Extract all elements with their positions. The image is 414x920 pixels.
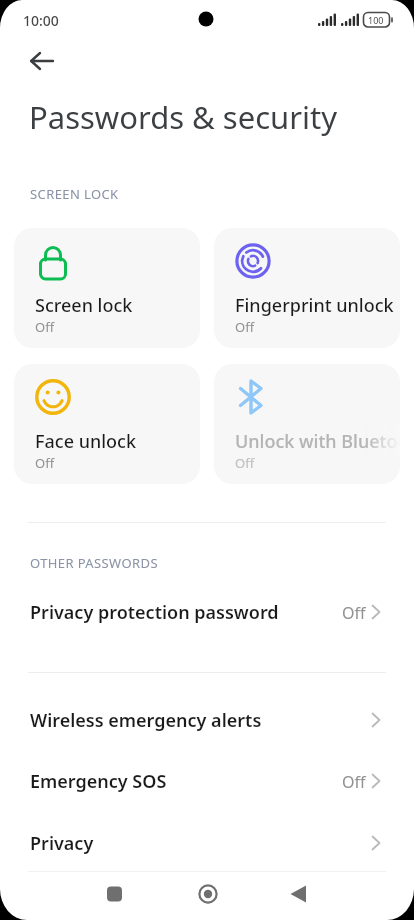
staticText: Face unlock: [35, 429, 136, 454]
staticText: 100: [368, 14, 384, 26]
staticText: Fingerprint unlock: [235, 293, 394, 318]
staticText: Off: [342, 602, 366, 624]
staticText: OTHER PASSWORDS: [30, 554, 158, 572]
staticText: 10:00: [23, 11, 59, 30]
staticText: Passwords & security: [29, 96, 338, 138]
staticText: Unlock with Bluetooth device: [235, 429, 400, 454]
staticText: Wireless emergency alerts: [30, 708, 262, 733]
staticText: Off: [35, 318, 55, 336]
staticText: Off: [235, 454, 255, 472]
staticText: Screen lock: [35, 293, 133, 318]
staticText: Off: [235, 318, 255, 336]
staticText: Off: [342, 771, 366, 793]
staticText: Privacy: [30, 831, 94, 856]
staticText: Privacy protection password: [30, 600, 279, 625]
staticText: Off: [35, 454, 55, 472]
staticText: Emergency SOS: [30, 769, 167, 794]
staticText: SCREEN LOCK: [30, 185, 119, 203]
